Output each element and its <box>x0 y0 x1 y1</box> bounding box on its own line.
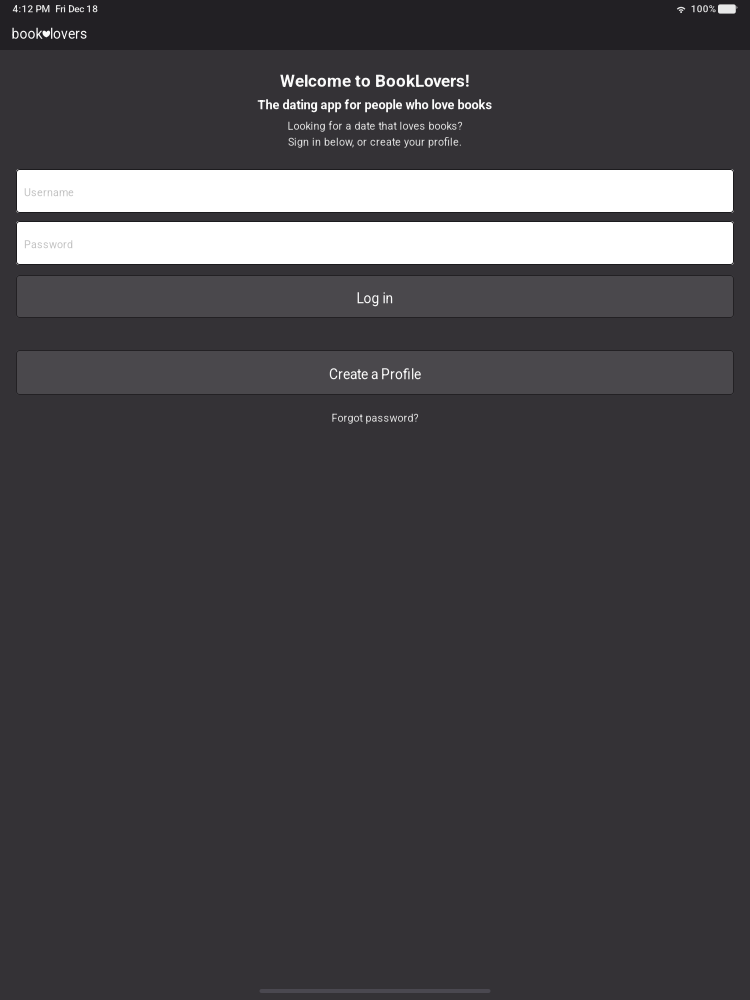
button[interactable]: Forgot password? <box>331 395 418 429</box>
staticText: Sign in below, or create your profile. <box>288 136 462 148</box>
staticText: Fri Dec 18 <box>55 3 98 15</box>
staticText: 4:12 PM <box>13 3 51 15</box>
button[interactable]: Log in <box>16 275 734 318</box>
staticText: Welcome to BookLovers! <box>280 71 470 91</box>
staticText: Log in <box>356 290 393 307</box>
staticText: lovers <box>50 26 87 42</box>
staticText: Looking for a date that loves books? <box>287 120 462 132</box>
staticText: 100% <box>691 3 716 15</box>
staticText: Create a Profile <box>329 366 421 383</box>
button[interactable]: Username <box>16 169 734 213</box>
button[interactable]: book <box>0 18 95 50</box>
button[interactable]: Create a Profile <box>16 350 734 395</box>
button[interactable]: Password <box>16 221 734 265</box>
staticText: The dating app for people who love books <box>257 97 492 112</box>
staticText: Username <box>24 186 74 199</box>
staticText: Forgot password? <box>331 412 418 424</box>
staticText: Password <box>24 238 73 251</box>
staticText: book <box>11 26 42 42</box>
